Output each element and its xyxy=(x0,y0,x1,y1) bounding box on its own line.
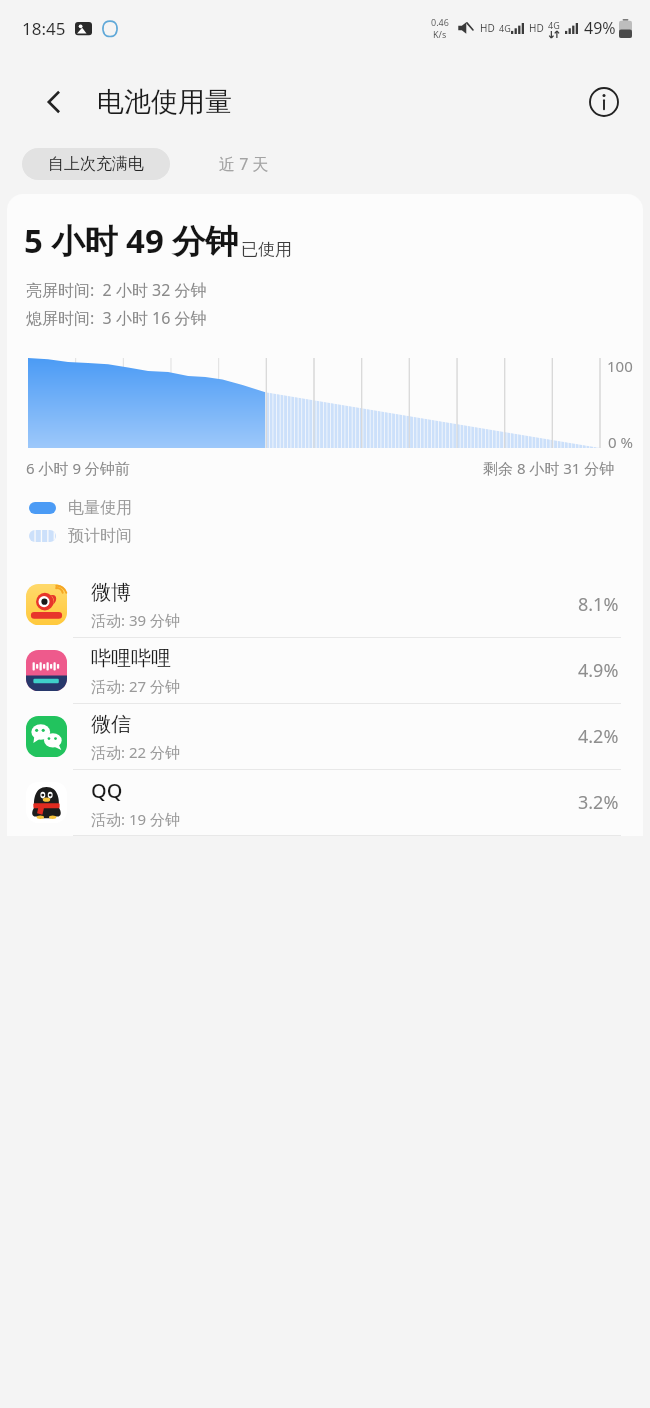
staticText: 4G xyxy=(548,19,560,31)
staticText: HD xyxy=(529,21,544,35)
staticText: 18:45 xyxy=(22,17,66,40)
staticText: 4.2% xyxy=(578,724,619,749)
staticText: 4G xyxy=(499,22,511,34)
staticText: 活动: 27 分钟 xyxy=(91,676,180,696)
staticText: 已使用 xyxy=(241,239,292,260)
staticText: 100 xyxy=(607,356,633,376)
staticText: 熄屏时间: 3 小时 16 分钟 xyxy=(26,307,207,329)
staticText: 自上次充满电 xyxy=(48,154,144,174)
staticText: 近 7 天 xyxy=(219,153,269,175)
staticText: 活动: 19 分钟 xyxy=(91,809,180,829)
staticText: HD xyxy=(480,21,495,35)
button[interactable]: 哔哩哔哩 xyxy=(7,638,643,703)
button[interactable]: Information xyxy=(580,78,628,126)
staticText: 亮屏时间: 2 小时 32 分钟 xyxy=(26,279,207,301)
staticText: 剩余 8 小时 31 分钟 xyxy=(483,458,615,478)
staticText: 预计时间 xyxy=(68,526,132,546)
staticText: 哔哩哔哩 xyxy=(91,646,171,671)
staticText: 电池使用量 xyxy=(97,85,232,119)
button[interactable]: 微信 xyxy=(7,704,643,769)
staticText: K/s xyxy=(433,28,447,40)
staticText: 微信 xyxy=(91,712,131,737)
staticText: 0 % xyxy=(608,432,633,452)
staticText: 6 小时 9 分钟前 xyxy=(26,458,130,478)
button[interactable]: 近 7 天 xyxy=(170,148,318,180)
button[interactable]: 微博 xyxy=(7,572,643,637)
staticText: QQ xyxy=(91,777,123,804)
staticText: 微博 xyxy=(91,580,131,605)
staticText: 8.1% xyxy=(578,592,619,617)
button[interactable]: QQ xyxy=(7,770,643,835)
staticText: 4.9% xyxy=(578,658,619,683)
staticText: 电量使用 xyxy=(68,498,132,518)
staticText: 0.46 xyxy=(431,16,449,28)
staticText: 5 小时 49 分钟 xyxy=(24,218,239,263)
staticText: 活动: 22 分钟 xyxy=(91,742,180,762)
staticText: 3.2% xyxy=(578,790,619,815)
staticText: 活动: 39 分钟 xyxy=(91,610,180,630)
button[interactable]: 自上次充满电 xyxy=(22,148,170,180)
button[interactable]: Back xyxy=(30,78,78,126)
staticText: 49% xyxy=(584,17,616,39)
